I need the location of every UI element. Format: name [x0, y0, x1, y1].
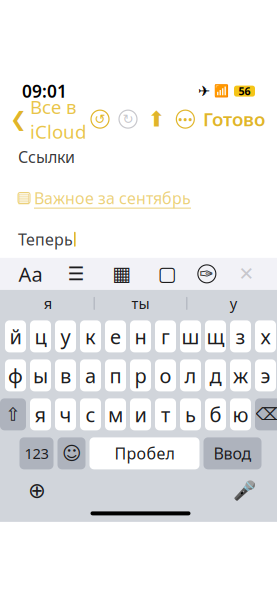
button[interactable]: Отменить: [91, 110, 109, 128]
staticText: ⊕: [28, 478, 46, 502]
button[interactable]: к: [80, 320, 101, 352]
staticText: х: [260, 323, 270, 350]
staticText: м: [108, 401, 123, 428]
button[interactable]: Формат: [16, 259, 46, 289]
button[interactable]: л: [180, 359, 201, 391]
staticText: р: [134, 362, 146, 389]
staticText: г: [161, 323, 170, 350]
button[interactable]: э: [255, 359, 276, 391]
button[interactable]: Готово: [203, 107, 265, 131]
staticText: ❮: [10, 108, 27, 130]
button[interactable]: й: [5, 320, 26, 352]
staticText: ▢: [158, 262, 177, 285]
button[interactable]: б: [205, 398, 226, 430]
staticText: щ: [206, 323, 224, 350]
button[interactable]: ф: [5, 359, 26, 391]
button[interactable]: Повторить: [119, 110, 137, 128]
button[interactable]: Разметка: [198, 265, 216, 283]
button[interactable]: в: [55, 359, 76, 391]
staticText: ☺: [62, 443, 81, 464]
staticText: я: [44, 294, 52, 313]
staticText: э: [260, 362, 270, 389]
staticText: Aa: [19, 261, 43, 287]
button[interactable]: ты: [95, 290, 186, 316]
staticText: ы: [33, 362, 48, 389]
staticText: б: [209, 401, 221, 428]
button[interactable]: Ввод: [203, 437, 261, 469]
staticText: ☰: [68, 263, 85, 284]
button[interactable]: Сменить язык: [22, 477, 52, 503]
button[interactable]: ⇧: [0, 398, 26, 430]
staticText: Готово: [203, 107, 265, 131]
button[interactable]: я: [30, 398, 51, 430]
staticText: ✈: [198, 83, 210, 99]
button[interactable]: д: [205, 359, 226, 391]
button[interactable]: 123: [19, 437, 53, 469]
button[interactable]: х: [255, 320, 276, 352]
staticText: 123: [24, 444, 48, 463]
button[interactable]: а: [80, 359, 101, 391]
button[interactable]: о: [155, 359, 176, 391]
button[interactable]: ж: [230, 359, 251, 391]
staticText: ✑: [199, 264, 214, 284]
staticText: ▤: [17, 190, 30, 205]
button[interactable]: е: [105, 320, 126, 352]
button[interactable]: Диктовка: [229, 477, 259, 503]
staticText: ⌫: [255, 404, 277, 424]
staticText: е: [110, 323, 121, 350]
button[interactable]: Таблица: [107, 259, 137, 289]
staticText: д: [209, 362, 221, 389]
button[interactable]: Список: [61, 259, 91, 289]
button[interactable]: ч: [55, 398, 76, 430]
button[interactable]: с: [80, 398, 101, 430]
button[interactable]: ш: [180, 320, 201, 352]
staticText: ю: [232, 401, 248, 428]
staticText: п: [109, 362, 121, 389]
staticText: а: [85, 362, 96, 389]
button[interactable]: м: [105, 398, 126, 430]
staticText: Важное за сентябрь: [34, 187, 191, 209]
staticText: и: [134, 401, 146, 428]
staticText: ш: [181, 323, 199, 350]
button[interactable]: ы: [30, 359, 51, 391]
staticText: к: [85, 323, 96, 350]
staticText: 📶: [214, 84, 229, 98]
staticText: Ввод: [213, 443, 251, 464]
button[interactable]: з: [230, 320, 251, 352]
button[interactable]: у: [55, 320, 76, 352]
button[interactable]: ц: [30, 320, 51, 352]
button[interactable]: ю: [230, 398, 251, 430]
button[interactable]: р: [130, 359, 151, 391]
button[interactable]: ⌫: [255, 398, 277, 430]
staticText: ь: [185, 401, 196, 428]
button[interactable]: ь: [180, 398, 201, 430]
button[interactable]: я: [2, 290, 94, 316]
button[interactable]: ❮: [10, 94, 86, 144]
staticText: ✕: [238, 263, 254, 284]
staticText: 09:01: [22, 80, 67, 103]
button[interactable]: Камера: [152, 259, 182, 289]
staticText: Пробел: [114, 443, 174, 464]
staticText: ч: [59, 401, 71, 428]
staticText: ↺: [94, 112, 105, 127]
staticText: т: [161, 401, 170, 428]
button[interactable]: г: [155, 320, 176, 352]
staticText: ц: [34, 323, 46, 350]
staticText: з: [235, 323, 245, 350]
button[interactable]: у: [187, 290, 277, 316]
button[interactable]: Пробел: [89, 437, 199, 469]
staticText: Все в iCloud: [30, 94, 86, 144]
staticText: с: [85, 401, 95, 428]
button[interactable]: т: [155, 398, 176, 430]
button[interactable]: и: [130, 398, 151, 430]
staticText: 56: [238, 84, 250, 98]
button[interactable]: п: [105, 359, 126, 391]
button[interactable]: Поделиться: [146, 108, 168, 130]
button[interactable]: Ещё: [176, 110, 194, 128]
staticText: у: [60, 323, 70, 350]
button[interactable]: Закрыть: [231, 259, 261, 289]
staticText: й: [9, 323, 21, 350]
button[interactable]: щ: [205, 320, 226, 352]
button[interactable]: н: [130, 320, 151, 352]
button[interactable]: ☺: [57, 437, 85, 469]
